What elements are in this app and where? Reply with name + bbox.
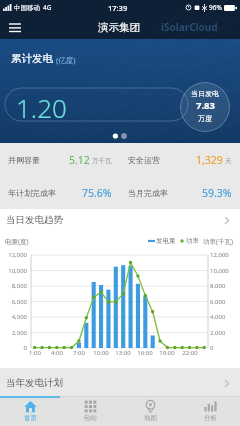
button[interactable]: 当日发电趋势 [0,209,240,231]
staticText: 当月完成率 [128,188,168,198]
button[interactable]: 分析 [180,396,240,426]
button[interactable]: Menu [7,19,23,35]
staticText: 7.83 [196,99,215,112]
staticText: 当日发电 [191,89,219,98]
staticText: 10,000 [1,267,27,275]
staticText: 中国移动 [14,4,40,12]
button[interactable]: 电站 [60,396,120,426]
staticText: 4,000 [210,313,240,321]
button[interactable]: 地图 [120,396,180,426]
staticText: 0 [1,344,27,352]
staticText: 10:00 [91,349,111,357]
staticText: 19:00 [157,349,177,357]
staticText: 75.6% [82,186,112,200]
button[interactable]: 年计划完成率 [0,176,120,209]
button[interactable]: 并网容量 [0,143,120,176]
staticText: 8,000 [1,282,27,290]
staticText: 12,000 [210,251,240,259]
staticText: 地图 [144,414,157,422]
staticText: 累计发电 [11,52,53,65]
staticText: 1:00 [25,349,45,357]
staticText: iSolarCloud [161,20,218,34]
staticText: 当日发电趋势 [6,214,63,226]
staticText: 16:00 [135,349,155,357]
staticText: 电站 [84,414,97,422]
staticText: 0 [210,344,240,352]
staticText: 13:00 [113,349,133,357]
staticText: 17:39 [108,3,128,13]
staticText: 电量(度) [5,237,29,246]
staticText: 7:00 [69,349,89,357]
staticText: 1.20 [16,90,67,125]
staticText: 1,329 [196,153,223,167]
staticText: 96% [209,3,222,12]
staticText: 演示集团 [98,21,140,34]
staticText: 8,000 [210,282,240,290]
staticText: 发电量 [156,237,176,245]
staticText: 4:00 [47,349,67,357]
button[interactable]: 安全运营 [120,143,240,176]
staticText: 功率 [186,237,199,245]
staticText: 6,000 [1,298,27,306]
staticText: 2,000 [1,329,27,337]
staticText: 天 [225,157,232,165]
staticText: 4,000 [1,313,27,321]
staticText: 2,000 [210,329,240,337]
staticText: 万度 [198,114,212,123]
button[interactable]: 首页 [0,396,60,426]
button[interactable]: 当日发电 [180,82,230,132]
staticText: 4G [43,3,52,12]
staticText: 22:00 [180,349,200,357]
staticText: 并网容量 [8,155,40,165]
staticText: 6,000 [210,298,240,306]
button[interactable]: 当月完成率 [120,176,240,209]
staticText: 10,000 [210,267,240,275]
button[interactable]: 当年发电计划 [0,370,240,396]
staticText: 分析 [204,414,217,422]
staticText: 安全运营 [128,155,160,165]
staticText: 59.3% [202,186,232,200]
staticText: 当年发电计划 [6,377,63,389]
staticText: (亿度) [56,55,76,65]
staticText: 首页 [24,414,37,422]
staticText: 功率(千瓦) [203,237,233,246]
staticText: 12,000 [1,251,27,259]
staticText: 5.12 [69,153,90,167]
staticText: 万千瓦 [92,157,112,165]
staticText: 年计划完成率 [8,188,56,198]
